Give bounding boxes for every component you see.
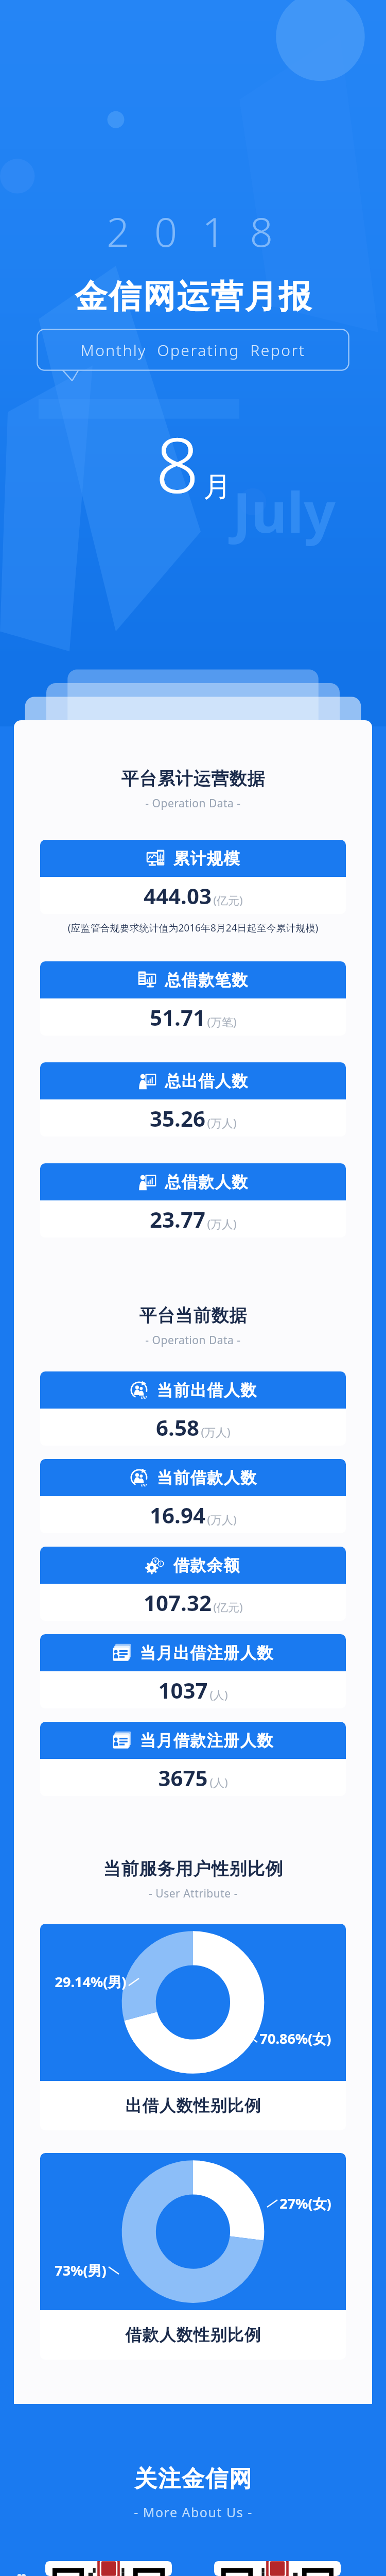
staticText: 51.71 [150,1003,205,1032]
staticText: 70.86%(女) [259,2029,331,2048]
staticText: 关注金信网 [134,2465,252,2493]
staticText: 23.77 [150,1205,205,1234]
staticText: 总借款人数 [165,1172,249,1192]
button[interactable]: 总借款人数 [40,1163,346,1238]
staticText: (亿元) [213,892,243,908]
staticText: 16.94 [150,1500,205,1530]
staticText: (万人) [207,1216,237,1231]
button[interactable]: 29.14%(男) [40,1924,346,2130]
button[interactable]: 借款余额 [40,1547,346,1621]
button[interactable]: 当月借款注册人数 [40,1722,346,1796]
staticText: 29.14%(男) [55,1972,127,1991]
button[interactable]: 下载手机客户端二维码 [45,2561,172,2576]
staticText: 3675 [158,1763,208,1792]
staticText: 当月出借注册人数 [139,1643,273,1663]
staticText: 73%(男) [55,2261,107,2280]
staticText: 平台累计运营数据 [121,768,265,790]
staticText: 当前服务用户性别比例 [103,1858,283,1880]
button[interactable]: 当前出借人数 [40,1371,346,1446]
staticText: Monthly Operating Report [80,340,306,361]
staticText: 平台当前数据 [139,1304,247,1327]
button[interactable]: 总出借人数 [40,1062,346,1137]
button[interactable]: 当月出借注册人数 [40,1634,346,1708]
staticText: 107.32 [144,1588,212,1617]
staticText: (亿元) [213,1599,243,1615]
staticText: - User Attribute - [149,1886,238,1901]
button[interactable]: 当前借款人数 [40,1459,346,1533]
staticText: (应监管合规要求统计值为2016年8月24日起至今累计规模) [40,921,346,935]
staticText: 借款余额 [173,1555,240,1575]
staticText: 总借款笔数 [165,970,249,990]
staticText: (万笔) [207,1014,237,1029]
staticText: (万人) [207,1115,237,1130]
staticText: - More About Us - [134,2503,253,2521]
staticText: 当月借款注册人数 [139,1731,273,1751]
staticText: (万人) [201,1424,231,1439]
button[interactable]: 73%(男) [40,2153,346,2360]
staticText: (人) [209,1687,228,1702]
button[interactable]: 金信网订阅号二维码 [214,2561,341,2576]
staticText: - Operation Data - [145,796,241,811]
staticText: 2 0 1 8 [107,204,280,259]
staticText: 444.03 [144,881,212,910]
staticText: (万人) [207,1512,237,1527]
staticText: 8 [155,412,199,516]
staticText: (人) [209,1774,228,1790]
button[interactable]: 累计规模 [40,840,346,914]
button[interactable]: 总借款笔数 [40,961,346,1036]
staticText: 借款人数性别比例 [125,2325,261,2345]
staticText: 27%(女) [279,2194,331,2213]
staticText: 6.58 [156,1413,199,1442]
staticText: 1037 [158,1675,208,1705]
staticText: 35.26 [150,1104,205,1133]
staticText: 总出借人数 [165,1071,249,1091]
staticText: 当前出借人数 [156,1380,257,1400]
staticText: - Operation Data - [145,1333,241,1348]
staticText: 当前借款人数 [156,1468,257,1488]
staticText: 累计规模 [173,849,240,869]
staticText: 月 [203,469,231,504]
staticText: 出借人数性别比例 [125,2095,261,2116]
staticText: 金信网运营月报 [74,276,312,317]
staticText: July [233,473,336,549]
